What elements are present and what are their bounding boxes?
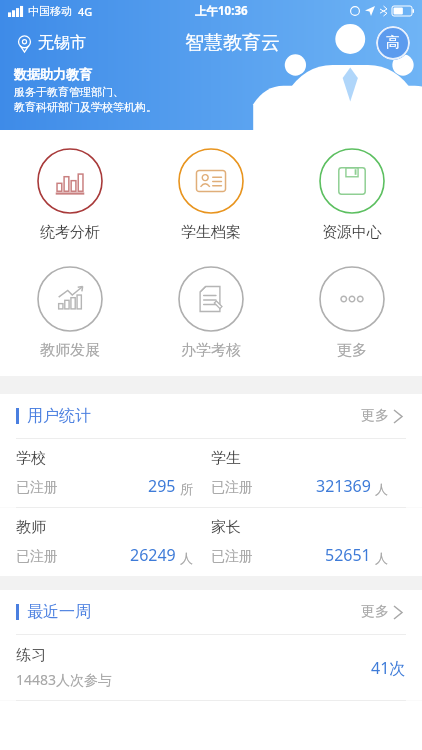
staticText: 已注册	[211, 548, 253, 566]
staticText: 用户统计	[27, 406, 91, 426]
staticText: 教师	[16, 518, 46, 537]
staticText: 高	[386, 34, 400, 52]
staticText: 学生	[211, 449, 241, 468]
button[interactable]: 更多	[357, 403, 406, 429]
staticText: 资源中心	[322, 223, 382, 242]
staticText: 所	[180, 481, 193, 497]
staticText: 无锡市	[38, 33, 86, 53]
staticText: 教育科研部门及学校等机构。	[14, 100, 157, 114]
staticText: 52651	[325, 544, 371, 566]
staticText: 家长	[211, 518, 241, 537]
staticText: 人	[375, 550, 388, 566]
staticText: 数据助力教育	[14, 66, 92, 82]
staticText: 295	[148, 475, 176, 497]
button[interactable]: 学校	[16, 449, 211, 497]
staticText: 学校	[16, 449, 46, 468]
staticText: 已注册	[16, 479, 58, 497]
staticText: 练习	[16, 646, 46, 665]
staticText: 人	[180, 550, 193, 566]
button[interactable]: 资源中心	[281, 144, 422, 246]
staticText: 更多	[361, 603, 389, 621]
staticText: 321369	[316, 475, 371, 497]
button[interactable]: 教师	[16, 518, 211, 566]
staticText: 教师发展	[40, 341, 100, 360]
staticText: 更多	[361, 407, 389, 425]
staticText: 办学考核	[181, 341, 241, 360]
button[interactable]: 更多	[281, 262, 422, 364]
staticText: 服务于教育管理部门、	[14, 85, 124, 99]
staticText: 中国移动	[28, 4, 72, 18]
button[interactable]: 练习	[0, 635, 422, 700]
staticText: 统考分析	[40, 223, 100, 242]
staticText: 学生档案	[181, 223, 241, 242]
staticText: 人	[375, 481, 388, 497]
button[interactable]: 教师发展	[0, 262, 140, 364]
staticText: 14483人次参与	[16, 670, 113, 689]
staticText: 更多	[337, 341, 367, 360]
staticText: 智慧教育云	[185, 31, 280, 55]
button[interactable]: 办学考核	[140, 262, 281, 364]
button[interactable]: 统考分析	[0, 144, 140, 246]
staticText: 26249	[130, 544, 176, 566]
button[interactable]: 学生	[211, 449, 406, 497]
staticText: 已注册	[16, 548, 58, 566]
button[interactable]: 学生档案	[140, 144, 281, 246]
staticText: 上午10:36	[195, 3, 248, 19]
staticText: 已注册	[211, 479, 253, 497]
staticText: 41次	[371, 657, 406, 679]
button[interactable]: Profile	[376, 26, 410, 60]
button[interactable]: 更多	[357, 599, 406, 625]
button[interactable]: 无锡市	[12, 29, 90, 57]
staticText: 最近一周	[27, 602, 91, 622]
button[interactable]: 家长	[211, 518, 406, 566]
staticText: 4G	[78, 4, 93, 19]
